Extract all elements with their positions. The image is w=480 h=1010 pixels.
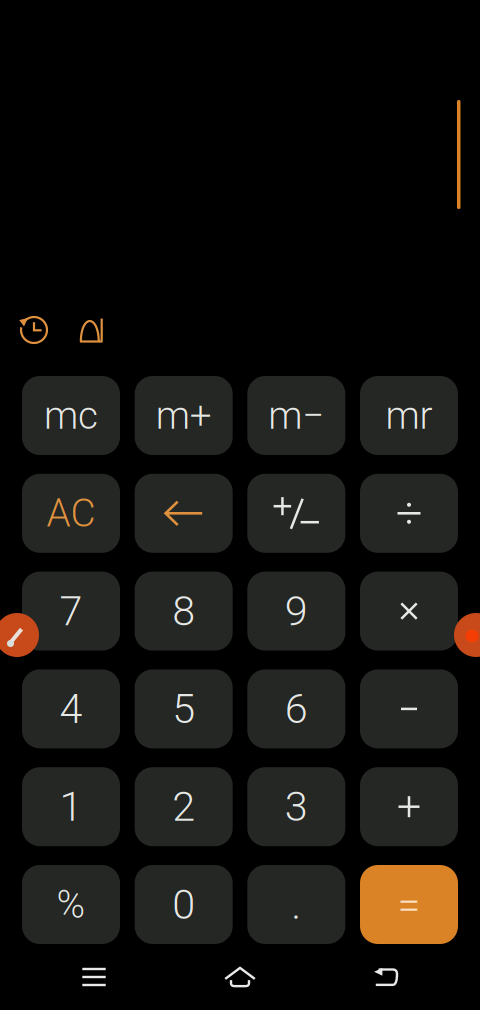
- button[interactable]: 4: [22, 669, 120, 748]
- staticText: %: [56, 882, 85, 927]
- staticText: .: [291, 880, 301, 929]
- staticText: AC: [46, 491, 95, 536]
- button[interactable]: m+: [135, 376, 233, 455]
- button[interactable]: AC: [22, 474, 120, 553]
- staticText: 1: [59, 782, 82, 831]
- staticText: 8: [172, 587, 195, 635]
- button[interactable]: m−: [247, 376, 345, 455]
- button[interactable]: History: [19, 316, 49, 344]
- button[interactable]: =: [360, 865, 458, 944]
- button[interactable]: mc: [22, 376, 120, 455]
- button[interactable]: 3: [247, 767, 345, 846]
- button[interactable]: .: [247, 865, 345, 944]
- staticText: 7: [59, 587, 82, 635]
- button[interactable]: 0: [135, 865, 233, 944]
- button[interactable]: 8: [135, 572, 233, 651]
- staticText: 3: [285, 782, 308, 831]
- staticText: m−: [268, 393, 324, 438]
- button[interactable]: Divide: [360, 474, 458, 553]
- button[interactable]: Minus: [360, 669, 458, 748]
- staticText: mc: [44, 393, 98, 438]
- staticText: m+: [156, 393, 212, 438]
- button[interactable]: 2: [135, 767, 233, 846]
- button[interactable]: Home: [167, 956, 313, 998]
- button[interactable]: Graph: [79, 317, 103, 342]
- staticText: 6: [285, 685, 308, 733]
- button[interactable]: 7: [22, 572, 120, 651]
- staticText: =: [397, 880, 420, 929]
- button[interactable]: Multiply: [360, 572, 458, 651]
- button[interactable]: 1: [22, 767, 120, 846]
- button[interactable]: Backspace: [135, 474, 233, 553]
- button[interactable]: Recents: [21, 956, 167, 998]
- staticText: 5: [172, 685, 195, 733]
- staticText: 9: [285, 587, 308, 635]
- button[interactable]: Plus: [360, 767, 458, 846]
- button[interactable]: 9: [247, 572, 345, 651]
- button[interactable]: %: [22, 865, 120, 944]
- staticText: mr: [385, 393, 432, 438]
- button[interactable]: mr: [360, 376, 458, 455]
- staticText: 0: [172, 880, 195, 929]
- staticText: 4: [59, 685, 82, 733]
- button[interactable]: 6: [247, 669, 345, 748]
- staticText: 2: [172, 782, 195, 831]
- button[interactable]: 5: [135, 669, 233, 748]
- button[interactable]: Plus minus: [247, 474, 345, 553]
- button[interactable]: Back: [313, 956, 459, 998]
